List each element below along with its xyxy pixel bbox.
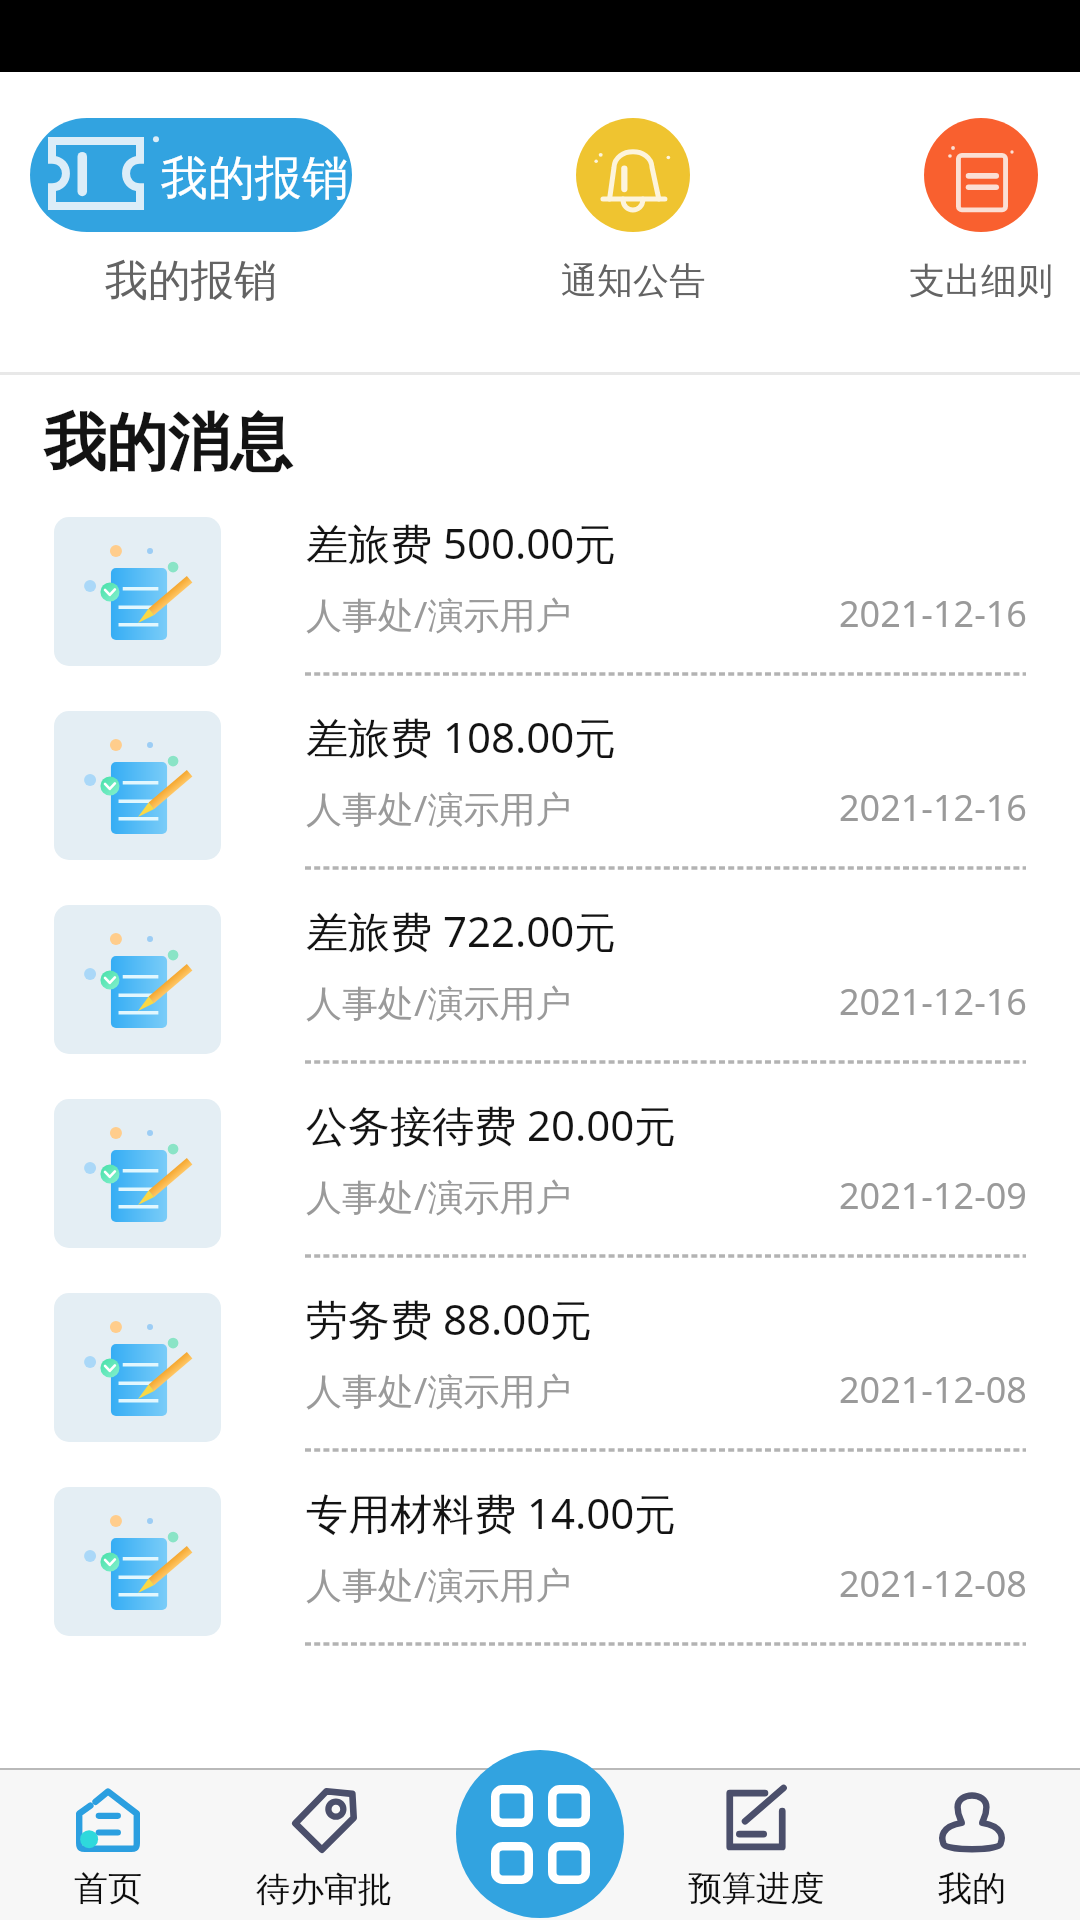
staticText: 人事处/演示用户 (306, 1560, 572, 1609)
staticText: 2021-12-09 (839, 1171, 1027, 1220)
staticText: 支出细则 (909, 258, 1053, 303)
button[interactable]: 我的 (864, 1770, 1080, 1920)
staticText: 人事处/演示用户 (306, 978, 572, 1027)
staticText: 2021-12-08 (839, 1559, 1027, 1608)
staticText: 2021-12-16 (839, 589, 1027, 638)
button[interactable]: 差旅费 722.00元 (0, 882, 1080, 1076)
staticText: 人事处/演示用户 (306, 784, 572, 833)
staticText: 公务接待费 20.00元 (306, 1096, 677, 1153)
staticText: 差旅费 108.00元 (306, 708, 617, 765)
staticText: 预算进度 (688, 1867, 824, 1910)
staticText: 我的报销 (161, 149, 349, 208)
button[interactable]: 差旅费 500.00元 (0, 494, 1080, 688)
button[interactable]: 预算进度 (648, 1770, 864, 1920)
button[interactable]: 通知公告 (523, 118, 743, 303)
button[interactable]: 公务接待费 20.00元 (0, 1076, 1080, 1270)
staticText: 差旅费 722.00元 (306, 902, 617, 959)
button[interactable]: 差旅费 108.00元 (0, 688, 1080, 882)
staticText: 首页 (74, 1867, 142, 1910)
button[interactable]: 我的报销 (30, 118, 352, 308)
staticText: 2021-12-16 (839, 977, 1027, 1026)
button[interactable]: 支出细则 (871, 118, 1080, 303)
staticText: 2021-12-08 (839, 1365, 1027, 1414)
staticText: 我的 (938, 1867, 1006, 1910)
staticText: 人事处/演示用户 (306, 590, 572, 639)
staticText: 我的消息 (44, 404, 292, 482)
staticText: 人事处/演示用户 (306, 1172, 572, 1221)
button[interactable]: 劳务费 88.00元 (0, 1270, 1080, 1464)
staticText: 待办审批 (256, 1868, 392, 1911)
button[interactable]: 专用材料费 14.00元 (0, 1464, 1080, 1658)
staticText: 差旅费 500.00元 (306, 514, 617, 571)
button[interactable]: 待办审批 (216, 1770, 432, 1920)
staticText: 2021-12-16 (839, 783, 1027, 832)
staticText: 我的报销 (105, 254, 277, 308)
staticText: 通知公告 (561, 258, 705, 303)
staticText: 人事处/演示用户 (306, 1366, 572, 1415)
button[interactable]: 应用中心 (456, 1750, 624, 1918)
staticText: 专用材料费 14.00元 (306, 1484, 677, 1541)
staticText: 劳务费 88.00元 (306, 1290, 593, 1347)
button[interactable]: 首页 (0, 1770, 216, 1920)
